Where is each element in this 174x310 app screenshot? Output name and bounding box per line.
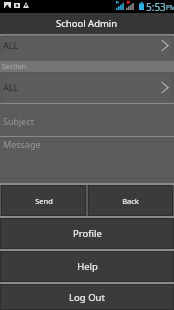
button[interactable]: Help [1,252,173,281]
staticText: Subject [3,115,35,127]
button[interactable]: Back [89,186,172,215]
button[interactable]: ALL [0,36,174,61]
staticText: Send [35,196,53,206]
staticText: Profile [73,227,102,240]
button[interactable]: Profile [1,219,173,248]
button[interactable]: ALL [0,72,174,103]
other: Open dropdown [162,82,168,93]
button[interactable]: Message [0,137,174,183]
staticText: 5:53 [146,0,166,13]
other: Open dropdown [162,40,168,51]
button[interactable]: Log Out [1,285,173,309]
staticText: Section [2,62,27,72]
staticText: ALL [3,81,19,93]
staticText: ALL [3,39,19,51]
staticText: Message [3,138,41,150]
button[interactable]: Send [2,186,85,215]
staticText: School Admin [56,17,118,30]
staticText: Log Out [69,291,105,304]
staticText: Back [122,196,139,206]
button[interactable]: Subject [0,104,174,136]
staticText: Help [77,260,98,273]
staticText: PM [166,3,174,12]
